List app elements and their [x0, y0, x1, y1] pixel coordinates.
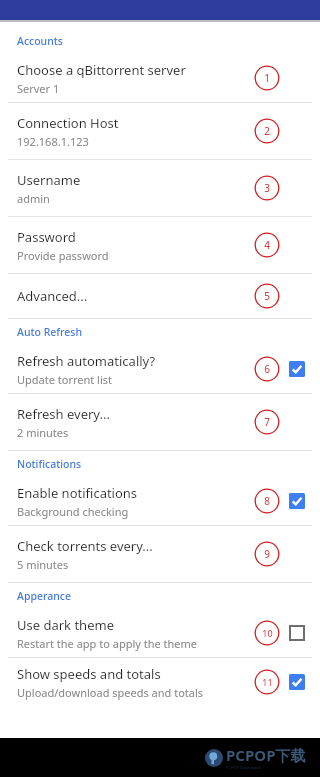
staticText: Accounts: [17, 34, 63, 48]
staticText: Server 1: [17, 81, 60, 96]
staticText: Provide password: [17, 248, 109, 263]
staticText: Connection Host: [17, 114, 119, 132]
staticText: Use dark theme: [17, 616, 114, 634]
staticText: PCPOP下载: [226, 745, 306, 765]
button[interactable]: Show speeds and totals: [282, 667, 312, 697]
button[interactable]: Refresh automatically?: [282, 354, 312, 384]
button[interactable]: Enable notifications: [282, 486, 312, 516]
staticText: 3: [264, 181, 270, 195]
button[interactable]: Use dark theme: [282, 618, 312, 648]
staticText: 2: [264, 124, 270, 138]
button[interactable]: Refresh automatically?: [0, 345, 320, 393]
staticText: 5 minutes: [17, 557, 69, 572]
staticText: Refresh automatically?: [17, 352, 156, 370]
staticText: Enable notifications: [17, 484, 138, 502]
button[interactable]: Password: [0, 217, 320, 273]
staticText: 1: [264, 71, 270, 85]
staticText: Upload/download speeds and totals: [17, 685, 204, 700]
staticText: 6: [264, 362, 270, 376]
staticText: 4: [264, 238, 270, 252]
staticText: Advanced...: [17, 287, 88, 305]
staticText: 11: [262, 676, 273, 688]
staticText: 192.168.1.123: [17, 134, 89, 149]
staticText: Background checking: [17, 504, 129, 519]
button[interactable]: Check torrents every...: [0, 526, 320, 582]
staticText: Restart the app to apply the theme: [17, 636, 198, 651]
staticText: Notifications: [17, 457, 82, 471]
staticText: Update torrent list: [17, 372, 113, 387]
staticText: 8: [264, 494, 270, 508]
button[interactable]: Enable notifications: [0, 477, 320, 525]
button[interactable]: Show speeds and totals: [0, 658, 320, 706]
button[interactable]: Refresh every...: [0, 394, 320, 450]
staticText: 2 minutes: [17, 425, 69, 440]
button[interactable]: Username: [0, 160, 320, 216]
staticText: Choose a qBittorrent server: [17, 61, 186, 79]
staticText: Show speeds and totals: [17, 665, 161, 683]
staticText: admin: [17, 191, 50, 206]
button[interactable]: Choose a qBittorrent server: [0, 54, 320, 102]
staticText: 5: [264, 289, 270, 303]
staticText: 9: [264, 547, 270, 561]
staticText: Username: [17, 171, 81, 189]
staticText: 7: [264, 415, 270, 429]
staticText: Password: [17, 228, 76, 246]
staticText: PCPOP Downloads: [226, 765, 261, 770]
button[interactable]: Use dark theme: [0, 609, 320, 657]
button[interactable]: Connection Host: [0, 103, 320, 159]
staticText: Apperance: [17, 589, 71, 603]
staticText: Refresh every...: [17, 405, 110, 423]
staticText: Auto Refresh: [17, 325, 82, 339]
button[interactable]: Advanced...: [0, 274, 320, 318]
staticText: 10: [262, 627, 273, 639]
staticText: Check torrents every...: [17, 537, 153, 555]
